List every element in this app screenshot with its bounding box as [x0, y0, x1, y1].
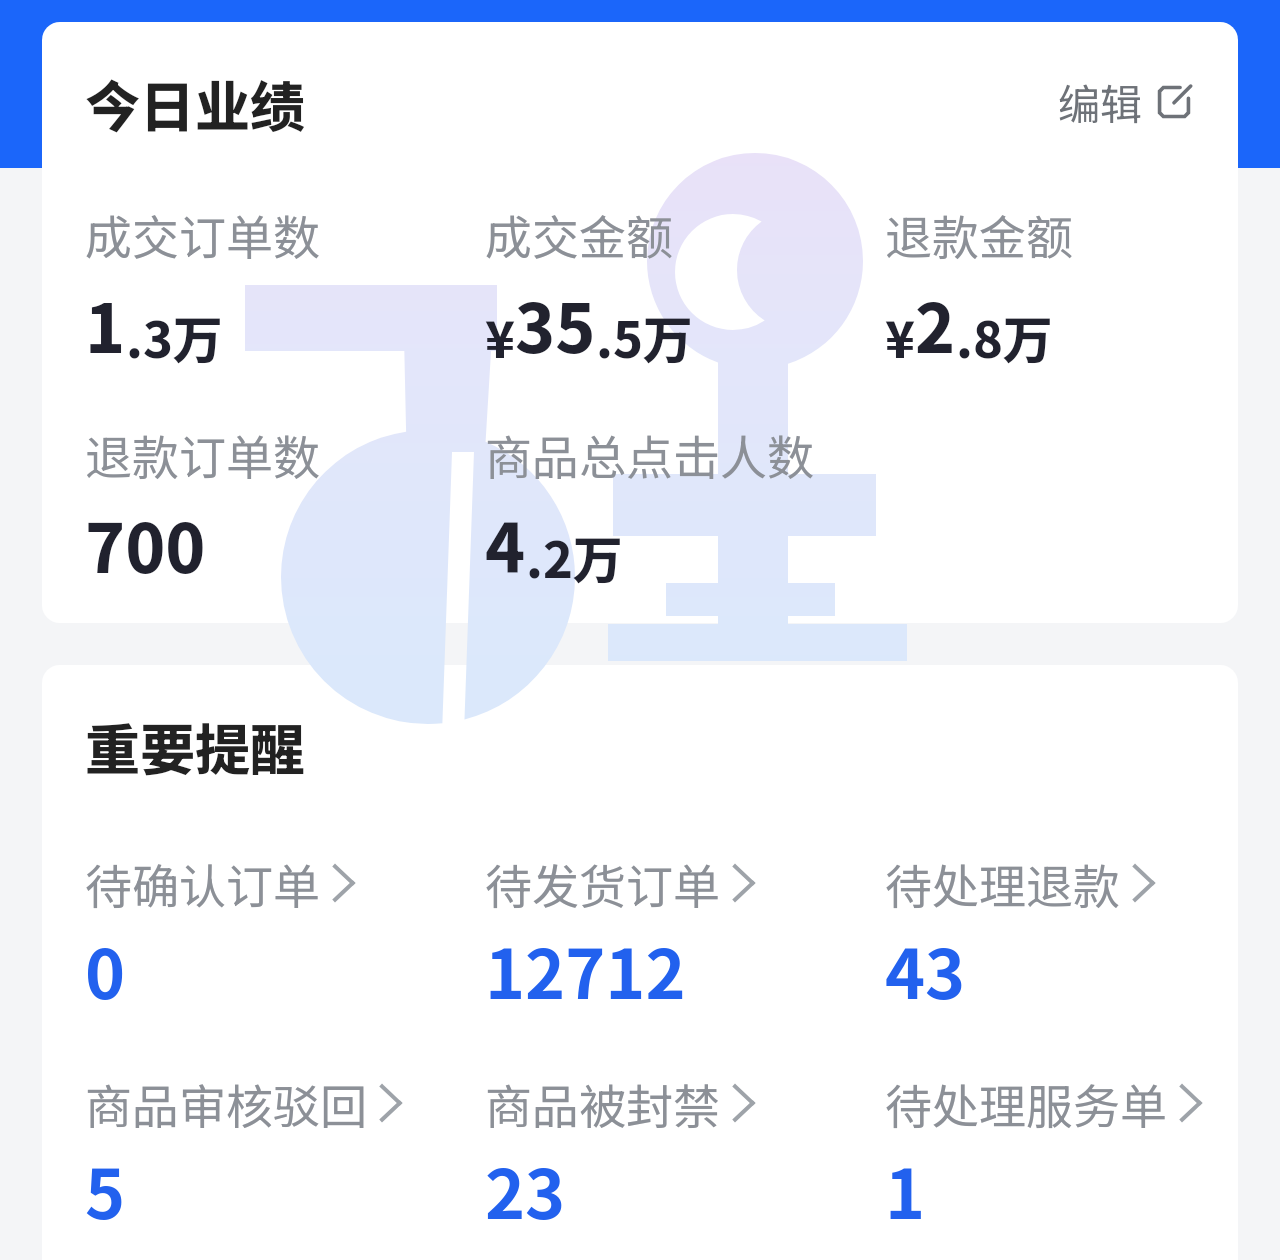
other: Edit — [1155, 83, 1193, 121]
staticText: 待确认订单 — [85, 849, 320, 917]
staticText: 商品总点击人数 — [485, 420, 814, 488]
staticText: 35 — [515, 275, 596, 372]
button[interactable]: 商品被封禁 — [485, 1061, 860, 1202]
staticText: 商品审核驳回 — [85, 1069, 367, 1137]
button[interactable]: 商品审核驳回 — [85, 1061, 460, 1202]
staticText: 12712 — [485, 920, 686, 1018]
staticText: 成交金额 — [485, 200, 673, 268]
staticText: 23 — [485, 1140, 566, 1238]
staticText: 0 — [85, 920, 126, 1018]
button[interactable]: 编辑 Edit — [1046, 59, 1205, 144]
button[interactable]: 待确认订单 — [85, 841, 460, 982]
staticText: 2 — [915, 275, 956, 372]
button[interactable]: 待发货订单 — [485, 841, 860, 982]
staticText: 商品被封禁 — [485, 1069, 720, 1137]
staticText: 1 — [85, 275, 126, 372]
staticText: .2万 — [526, 520, 623, 592]
staticText: 待处理服务单 — [885, 1069, 1167, 1137]
staticText: 5 — [85, 1140, 126, 1238]
staticText: .5万 — [596, 300, 693, 372]
button[interactable]: 待处理退款 — [885, 841, 1260, 982]
staticText: .3万 — [126, 300, 223, 372]
staticText: 编辑 — [1058, 71, 1143, 132]
staticText: ¥ — [485, 300, 515, 372]
staticText: 今日业绩 — [85, 63, 306, 143]
staticText: .8万 — [956, 300, 1053, 372]
staticText: 43 — [885, 920, 966, 1018]
staticText: 1 — [885, 1140, 926, 1238]
staticText: 退款金额 — [885, 200, 1073, 268]
staticText: 4 — [485, 495, 526, 592]
staticText: 待发货订单 — [485, 849, 720, 917]
staticText: 待处理退款 — [885, 849, 1120, 917]
button[interactable]: 待处理服务单 — [885, 1061, 1260, 1202]
staticText: ¥ — [885, 300, 915, 372]
staticText: 成交订单数 — [85, 200, 320, 268]
staticText: 重要提醒 — [85, 706, 306, 786]
staticText: 退款订单数 — [85, 420, 320, 488]
staticText: 700 — [85, 495, 206, 592]
